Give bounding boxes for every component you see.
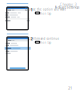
button[interactable]: Continue [10,67,26,69]
staticText: Chapter 3 [59,1,76,7]
staticText: Then tap [39,12,51,15]
staticText: 2 [30,36,32,41]
staticText: Confirm and continue [28,37,59,40]
staticText: Choose the option you want [25,8,66,11]
button[interactable]: Control [35,41,40,44]
button[interactable]: Control [35,12,40,14]
staticText: 21 [68,85,72,91]
staticText: Then tap [39,41,51,44]
button[interactable]: Selected item [5,47,31,50]
staticText: 1 [30,7,32,12]
staticText: Adjust settings [54,4,79,9]
